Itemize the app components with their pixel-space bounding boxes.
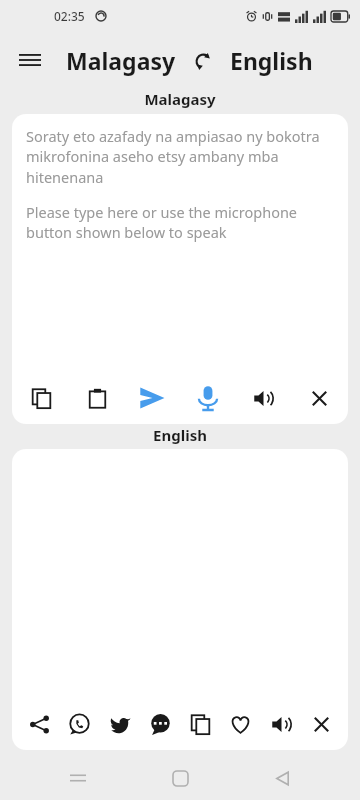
button[interactable]: Malagasy	[66, 45, 176, 76]
staticText: English	[230, 45, 313, 76]
staticText: Soraty eto azafady na ampiasao ny bokotr…	[26, 126, 334, 188]
button[interactable]: Speak	[189, 376, 227, 420]
button[interactable]: Clear	[302, 702, 340, 746]
button[interactable]: Share	[20, 702, 58, 746]
button[interactable]: Menu	[8, 38, 52, 82]
button[interactable]: Swap languages	[188, 46, 218, 76]
button[interactable]: SMS	[141, 702, 179, 746]
button[interactable]: Back	[258, 756, 306, 800]
staticText: English	[153, 425, 207, 445]
button[interactable]: Copy	[22, 376, 60, 420]
button[interactable]: Listen	[244, 376, 282, 420]
button[interactable]: Paste	[78, 376, 116, 420]
button[interactable]: Home	[156, 756, 204, 800]
button[interactable]: Recents	[54, 756, 102, 800]
button[interactable]: Copy	[181, 702, 219, 746]
staticText: Please type here or use the microphone b…	[26, 202, 334, 243]
button[interactable]: Translate	[133, 376, 171, 420]
staticText: Malagasy	[144, 89, 216, 109]
button[interactable]: Twitter	[101, 702, 139, 746]
button[interactable]: Listen	[262, 702, 300, 746]
button[interactable]: Soraty eto azafady na ampiasao ny bokotr…	[12, 114, 348, 372]
staticText: 02:35	[54, 8, 85, 24]
button[interactable]: WhatsApp	[60, 702, 98, 746]
button[interactable]: Favorite	[221, 702, 259, 746]
button[interactable]: English	[230, 45, 313, 76]
staticText: Malagasy	[66, 45, 176, 76]
button[interactable]: Clear	[300, 376, 338, 420]
